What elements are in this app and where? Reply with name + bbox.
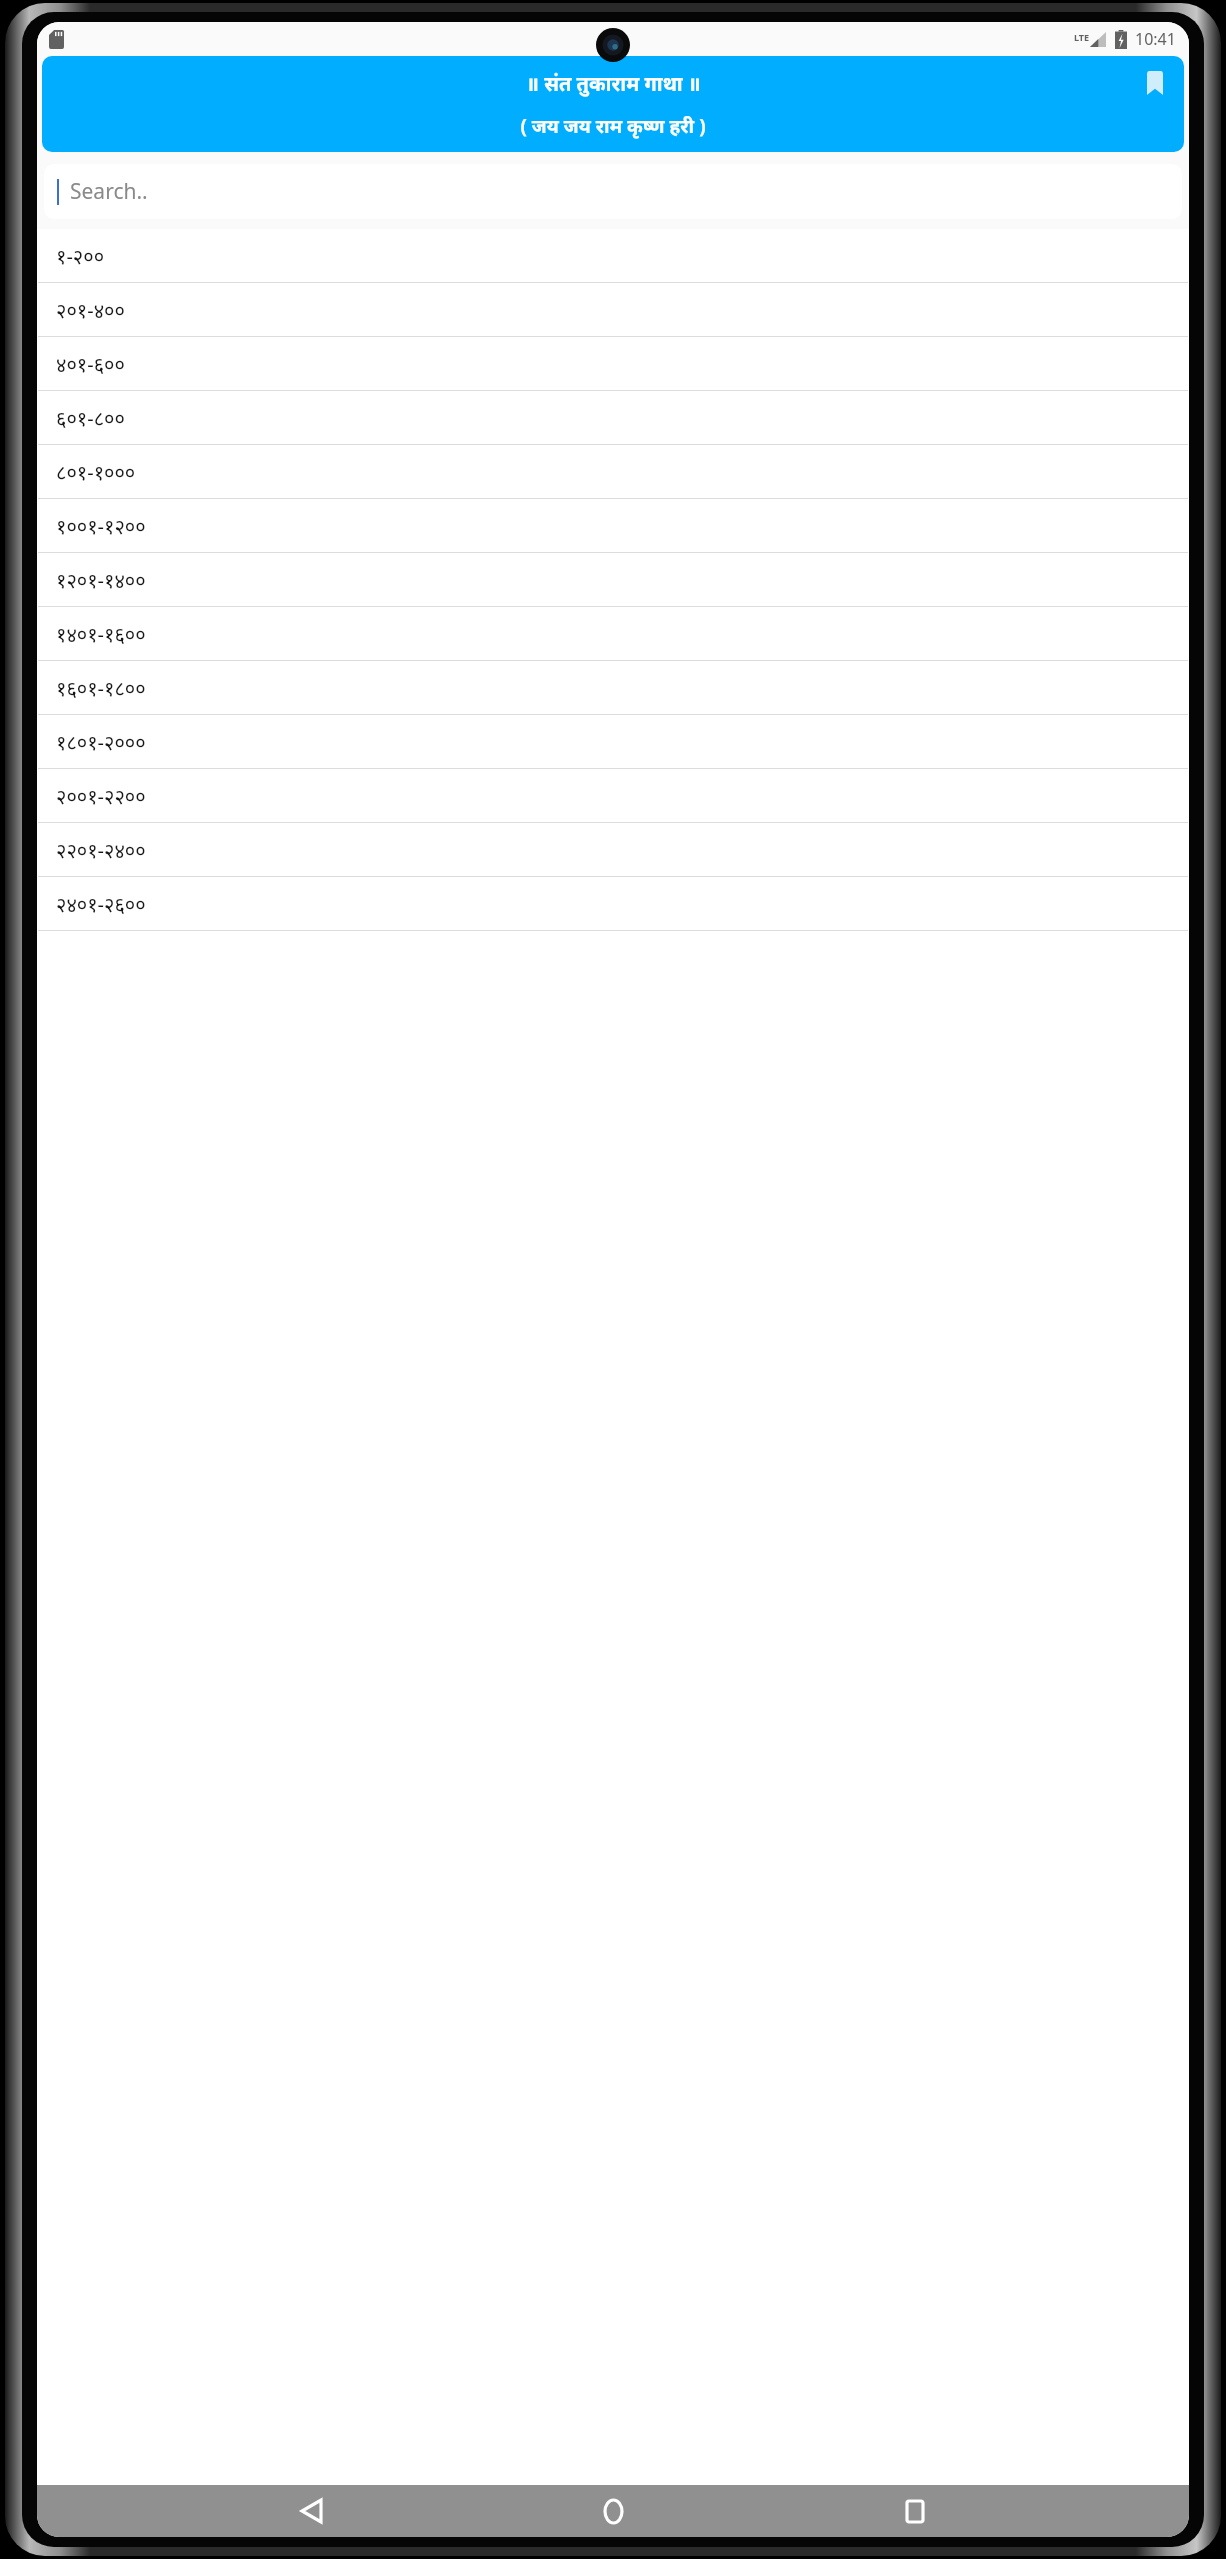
button[interactable]: २४०१-२६०० bbox=[37, 877, 1189, 931]
staticText: २००१-२२०० bbox=[56, 783, 146, 810]
staticText: Search.. bbox=[70, 177, 148, 206]
button[interactable]: ४०१-६०० bbox=[37, 337, 1189, 391]
staticText: ४०१-६०० bbox=[56, 351, 125, 378]
staticText: ६०१-८०० bbox=[56, 405, 125, 432]
staticText: ॥ संत तुकाराम गाथा ॥ bbox=[526, 70, 701, 97]
button[interactable]: Search.. bbox=[44, 164, 1182, 219]
staticText: १००१-१२०० bbox=[56, 513, 146, 540]
button[interactable]: १८०१-२००० bbox=[37, 715, 1189, 769]
staticText: LTE bbox=[1074, 31, 1090, 43]
staticText: २०१-४०० bbox=[56, 297, 125, 324]
button[interactable]: २०१-४०० bbox=[37, 283, 1189, 337]
button[interactable]: १६०१-१८०० bbox=[37, 661, 1189, 715]
button[interactable]: १००१-१२०० bbox=[37, 499, 1189, 553]
button[interactable]: १२०१-१४०० bbox=[37, 553, 1189, 607]
staticText: ( जय जय राम कृष्ण हरी ) bbox=[520, 113, 706, 139]
button[interactable]: Back bbox=[283, 2485, 339, 2537]
staticText: १-२०० bbox=[56, 243, 105, 270]
button[interactable]: ६०१-८०० bbox=[37, 391, 1189, 445]
staticText: 10:41 bbox=[1135, 28, 1176, 50]
button[interactable]: १-२०० bbox=[37, 229, 1189, 283]
staticText: १४०१-१६०० bbox=[56, 621, 146, 648]
staticText: १६०१-१८०० bbox=[56, 675, 146, 702]
button[interactable]: Recent apps bbox=[887, 2485, 943, 2537]
button[interactable]: Home bbox=[585, 2485, 641, 2537]
staticText: ८०१-१००० bbox=[56, 459, 136, 486]
button[interactable]: ८०१-१००० bbox=[37, 445, 1189, 499]
staticText: १२०१-१४०० bbox=[56, 567, 146, 594]
staticText: २२०१-२४०० bbox=[56, 837, 146, 864]
staticText: २४०१-२६०० bbox=[56, 891, 146, 918]
staticText: १८०१-२००० bbox=[56, 729, 146, 756]
button[interactable]: १४०१-१६०० bbox=[37, 607, 1189, 661]
button[interactable]: ॥ संत तुकाराम गाथा ॥ bbox=[42, 56, 1184, 152]
button[interactable]: २००१-२२०० bbox=[37, 769, 1189, 823]
button[interactable]: २२०१-२४०० bbox=[37, 823, 1189, 877]
button[interactable]: Bookmarks bbox=[1140, 68, 1170, 98]
